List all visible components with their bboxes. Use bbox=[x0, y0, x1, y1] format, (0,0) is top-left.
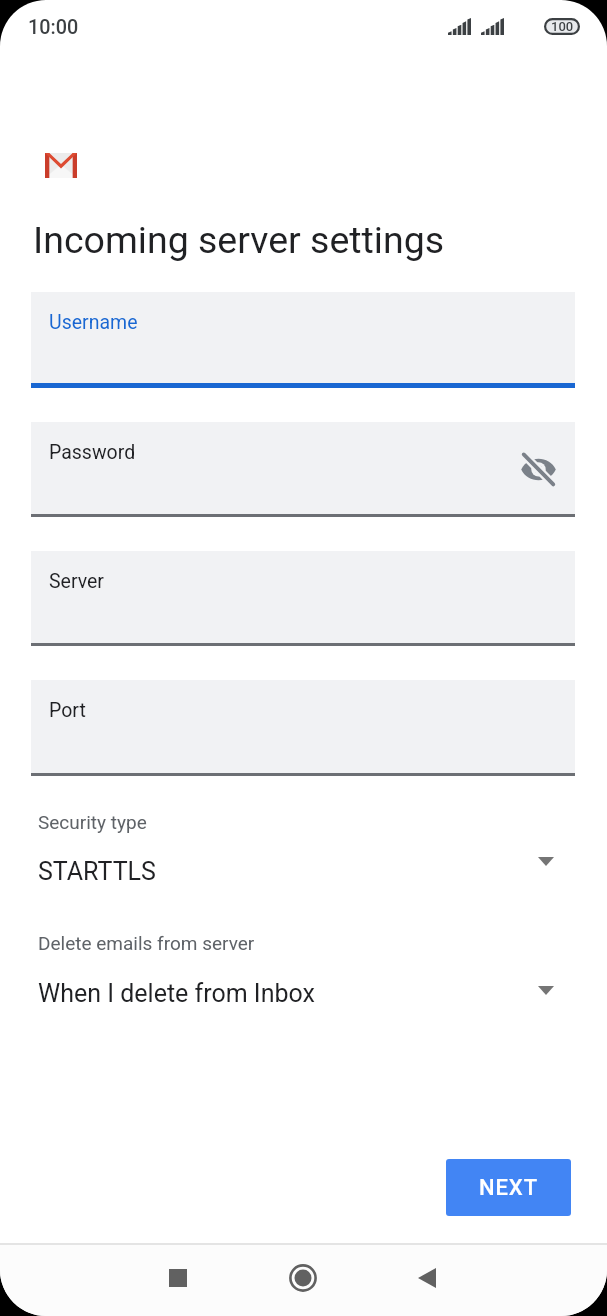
staticText: Incoming server settings bbox=[33, 218, 445, 262]
button[interactable]: Username bbox=[31, 292, 575, 388]
button[interactable]: Server bbox=[31, 551, 575, 646]
staticText: Delete emails from server bbox=[38, 932, 255, 954]
staticText: NEXT bbox=[479, 1175, 538, 1201]
button[interactable]: Password bbox=[31, 422, 575, 517]
staticText: 10:00 bbox=[28, 16, 79, 39]
button[interactable]: Home bbox=[258, 1242, 348, 1314]
button[interactable]: NEXT bbox=[446, 1159, 571, 1216]
staticText: STARTTLS bbox=[38, 857, 156, 886]
button[interactable]: Security type bbox=[31, 798, 575, 900]
staticText: Server bbox=[49, 570, 104, 593]
staticText: Password bbox=[49, 441, 136, 464]
staticText: Security type bbox=[38, 811, 147, 833]
button[interactable]: Delete emails from server bbox=[31, 919, 575, 1022]
staticText: When I delete from Inbox bbox=[38, 979, 315, 1008]
staticText: 100 bbox=[551, 19, 574, 34]
button[interactable]: Port bbox=[31, 680, 575, 776]
button[interactable]: Show password bbox=[521, 455, 556, 486]
button[interactable]: Recent apps bbox=[133, 1242, 223, 1314]
button[interactable]: Back bbox=[382, 1242, 472, 1314]
staticText: Username bbox=[49, 311, 138, 334]
staticText: Port bbox=[49, 699, 86, 722]
